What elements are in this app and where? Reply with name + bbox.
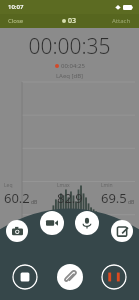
staticText: 00:00:35 (28, 32, 111, 61)
staticText: 60.2 (4, 189, 30, 207)
staticText: 00:04:25 (61, 62, 85, 70)
staticText: dB (31, 199, 38, 206)
button[interactable]: Record video (40, 211, 64, 235)
staticText: LAeq [dB] (0, 72, 139, 80)
staticText: Lmax (57, 182, 70, 189)
staticText: 69.5 (101, 189, 127, 207)
staticText: Leq (4, 182, 13, 189)
button[interactable]: Record audio (75, 211, 99, 235)
staticText: 03 (68, 16, 77, 26)
button[interactable]: Pause (101, 264, 127, 290)
staticText: 10:07 (8, 3, 24, 11)
staticText: 82.9 (57, 189, 83, 207)
staticText: dB (128, 199, 135, 206)
button[interactable]: Photo (6, 220, 28, 242)
staticText: Lmin (101, 182, 113, 189)
button[interactable]: Attach (104, 15, 139, 27)
button[interactable]: Add note (111, 220, 133, 242)
button[interactable]: Close (0, 15, 32, 27)
button[interactable]: Attachments (57, 264, 83, 290)
button[interactable]: Stop (12, 264, 38, 290)
